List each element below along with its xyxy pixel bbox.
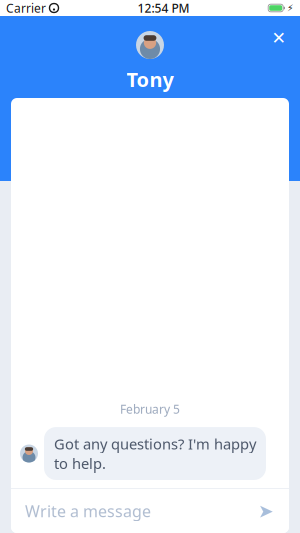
staticText: 12:54 PM	[138, 0, 190, 16]
staticText: ⚡︎	[287, 3, 294, 13]
button[interactable]: Close	[266, 25, 292, 51]
staticText: Write a message	[25, 500, 151, 522]
staticText: Carrier	[6, 0, 46, 16]
button[interactable]: Send	[243, 489, 289, 533]
button[interactable]: Write a message	[11, 489, 243, 533]
staticText: February 5	[120, 401, 180, 417]
staticText: Got any questions? I'm happy to help.	[54, 434, 256, 473]
staticText: Tony	[126, 66, 173, 93]
staticText: We typically reply in a few minutes	[54, 96, 245, 111]
staticText: ✕	[271, 28, 286, 48]
staticText: ➤	[258, 500, 274, 522]
